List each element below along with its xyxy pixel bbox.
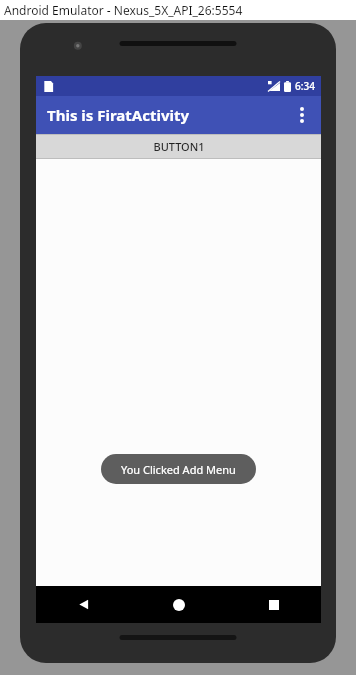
button[interactable]: Back — [36, 586, 131, 623]
staticText: This is FiratActivity — [47, 105, 190, 125]
button[interactable]: Home — [131, 586, 226, 623]
staticText: BUTTON1 — [153, 139, 205, 154]
button[interactable]: More options — [283, 96, 321, 134]
button[interactable]: Recent apps — [226, 586, 321, 623]
staticText: 6:34 — [295, 79, 315, 93]
staticText: You Clicked Add Menu — [121, 462, 236, 477]
button[interactable]: BUTTON1 — [36, 134, 321, 159]
staticText: Android Emulator - Nexus_5X_API_26:5554 — [4, 2, 243, 18]
